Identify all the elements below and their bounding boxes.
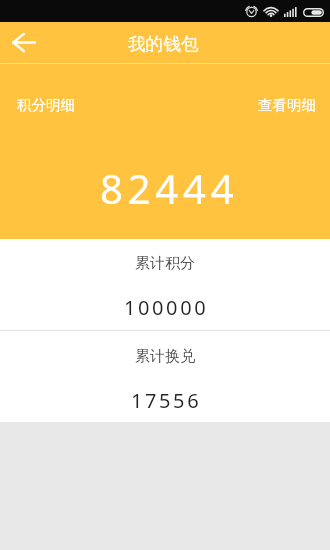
- button[interactable]: Back: [0, 22, 48, 63]
- staticText: 我的钱包: [128, 33, 199, 55]
- button[interactable]: 查看明细: [248, 86, 326, 124]
- staticText: 累计换兑: [135, 347, 195, 366]
- button[interactable]: 积分明细: [7, 86, 85, 124]
- button[interactable]: 累计换兑: [0, 331, 330, 422]
- staticText: 查看明细: [258, 96, 316, 114]
- staticText: 积分明细: [17, 96, 75, 114]
- staticText: 累计积分: [135, 254, 195, 273]
- staticText: 17556: [131, 387, 202, 414]
- button[interactable]: 累计积分: [0, 239, 330, 330]
- staticText: 82444: [100, 161, 239, 215]
- staticText: 100000: [124, 294, 209, 321]
